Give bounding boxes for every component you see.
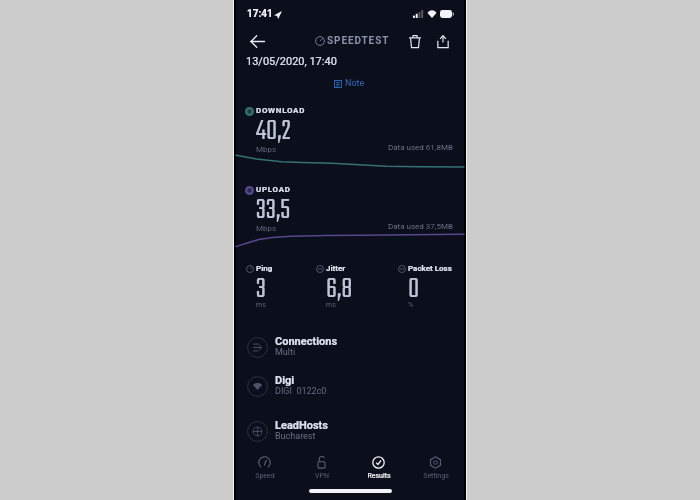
button[interactable]: Share	[430, 28, 456, 54]
staticText: Digi	[275, 374, 295, 387]
staticText: 13/05/2020, 17:40	[246, 55, 337, 68]
staticText: Ping	[256, 264, 273, 273]
button[interactable]: Speed	[236, 450, 293, 486]
button[interactable]: Delete	[402, 28, 428, 54]
staticText: Data used 37,5MB	[388, 222, 453, 231]
staticText: 0	[408, 267, 420, 311]
button[interactable]: Connections	[236, 328, 464, 366]
staticText: LeadHosts	[275, 419, 328, 432]
staticText: 40,2	[256, 109, 291, 153]
staticText: ms	[326, 301, 336, 309]
staticText: Multi	[275, 347, 296, 358]
staticText: SPEEDTEST	[327, 35, 390, 47]
staticText: UPLOAD	[256, 185, 291, 194]
staticText: Note	[345, 78, 365, 89]
staticText: VPN	[315, 472, 329, 480]
staticText: DIGI 0122c0	[275, 386, 327, 397]
staticText: 3	[256, 267, 266, 311]
staticText: Speed	[255, 472, 275, 480]
staticText: Results	[367, 472, 391, 480]
staticText: Settings	[423, 472, 449, 480]
staticText: %	[408, 301, 414, 309]
staticText: 6,8	[326, 267, 353, 311]
staticText: 17:41	[247, 8, 273, 20]
staticText: Connections	[275, 335, 338, 348]
staticText: Packet Loss	[408, 264, 452, 273]
staticText: Jitter	[326, 264, 346, 273]
button[interactable]: Back	[244, 28, 270, 54]
button[interactable]: LeadHosts	[236, 412, 464, 450]
staticText: DOWNLOAD	[256, 106, 306, 115]
staticText: Bucharest	[275, 431, 316, 442]
staticText: Data used 61,8MB	[388, 143, 453, 152]
staticText: Mbps	[256, 224, 277, 233]
button[interactable]: Digi	[236, 367, 464, 405]
button[interactable]: Settings	[407, 450, 464, 486]
staticText: ms	[256, 301, 266, 309]
button[interactable]: VPN	[293, 450, 350, 486]
button[interactable]: Note	[328, 76, 371, 91]
staticText: Mbps	[256, 145, 277, 154]
button[interactable]: Results	[350, 450, 407, 486]
staticText: 33,5	[256, 188, 291, 232]
